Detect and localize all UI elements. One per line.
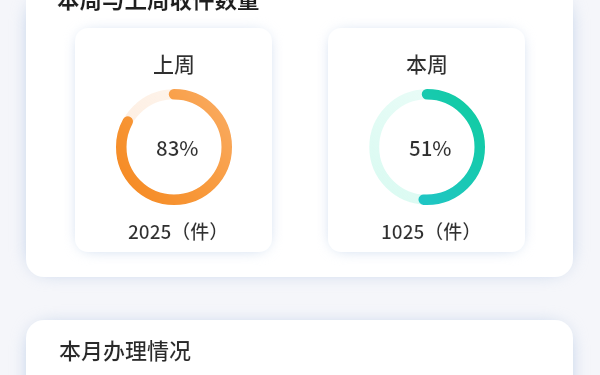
staticText: 本周 bbox=[406, 48, 448, 78]
button[interactable]: 本周 bbox=[328, 28, 525, 252]
staticText: 1025（件） bbox=[381, 217, 482, 245]
button[interactable]: 上周 bbox=[75, 28, 272, 252]
staticText: 本月办理情况 bbox=[59, 333, 192, 365]
staticText: 51% bbox=[409, 132, 452, 162]
staticText: 上周 bbox=[153, 48, 195, 78]
staticText: 2025（件） bbox=[128, 217, 229, 245]
staticText: 本周与上周收件数量 bbox=[57, 0, 260, 15]
staticText: 83% bbox=[156, 132, 199, 162]
